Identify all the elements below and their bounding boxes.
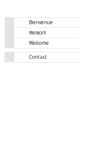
- button[interactable]: Contact: [0, 52, 85, 62]
- staticText: Welkom: [29, 30, 46, 36]
- staticText: Bienvenue: [29, 19, 53, 26]
- staticText: Contact: [29, 54, 47, 60]
- button[interactable]: Welcome: [0, 38, 85, 48]
- button[interactable]: Bienvenue: [0, 17, 85, 28]
- button[interactable]: Welkom: [0, 28, 85, 38]
- staticText: Welcome: [29, 40, 49, 46]
